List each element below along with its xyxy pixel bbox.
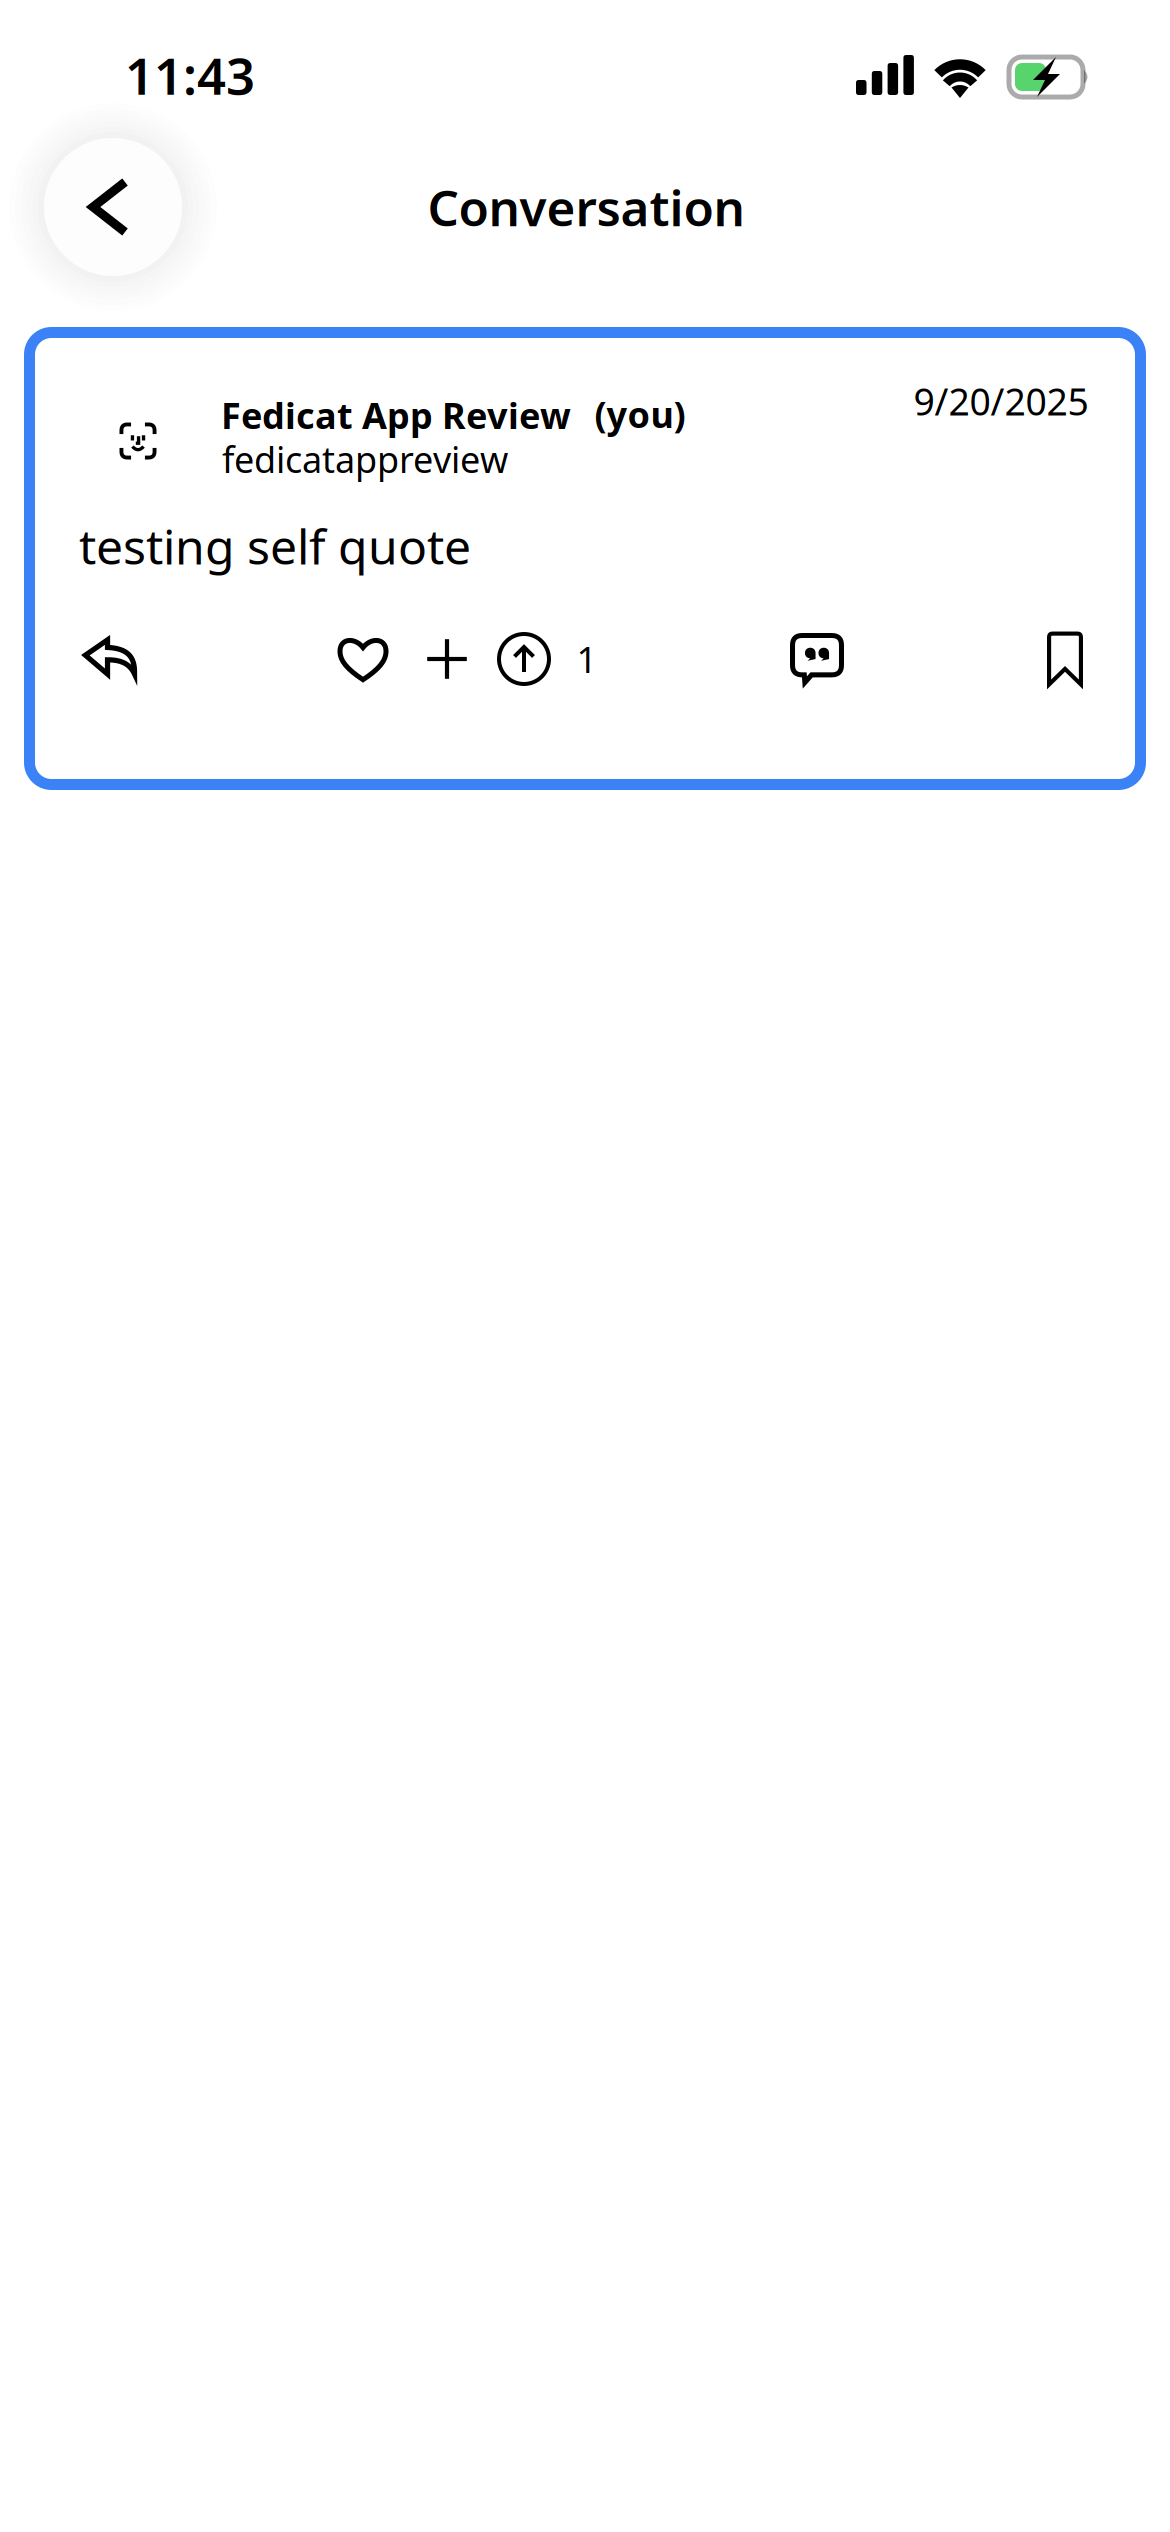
staticText: (you): [594, 390, 685, 438]
button[interactable]: Back: [8, 102, 218, 312]
button[interactable]: Boost: [486, 619, 562, 699]
button[interactable]: Favourite: [323, 619, 403, 699]
staticText: Fedicat App Review: [221, 391, 571, 439]
staticText: 11:43: [125, 41, 255, 109]
button[interactable]: Bookmark: [1027, 617, 1103, 701]
staticText: Conversation: [427, 174, 744, 240]
button[interactable]: Add reaction: [409, 621, 485, 697]
staticText: 9/20/2025: [913, 376, 1088, 426]
button[interactable]: Quote: [775, 617, 859, 701]
staticText: 1: [576, 635, 597, 683]
staticText: testing self quote: [79, 514, 471, 578]
button[interactable]: Reply: [68, 615, 152, 699]
staticText: fedicatappreview: [222, 435, 508, 483]
button[interactable]: Fedicat App Review: [24, 327, 1146, 790]
